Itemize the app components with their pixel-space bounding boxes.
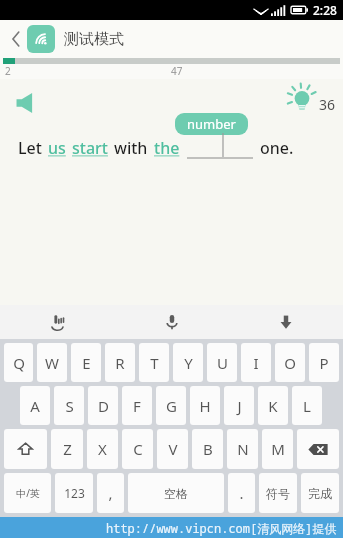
button[interactable]: G <box>156 386 186 425</box>
button[interactable]: B <box>192 429 223 469</box>
button[interactable]: 空格 <box>128 473 224 513</box>
staticText: X <box>98 439 107 459</box>
staticText: 47 <box>171 64 183 78</box>
button[interactable]: Back <box>5 22 27 56</box>
staticText: 中/英 <box>16 486 40 500</box>
staticText: 完成 <box>308 486 332 501</box>
button[interactable]: with <box>114 137 148 159</box>
staticText: H <box>199 396 211 416</box>
button[interactable]: , <box>97 473 124 513</box>
button[interactable]: A <box>20 386 50 425</box>
staticText: V <box>168 439 178 459</box>
button[interactable]: R <box>105 343 135 382</box>
button[interactable]: Let <box>18 137 42 159</box>
button[interactable]: I <box>241 343 271 382</box>
staticText: T <box>150 353 159 373</box>
button[interactable]: Answer blank <box>187 139 253 159</box>
staticText: one. <box>260 137 294 159</box>
staticText: Let <box>18 137 42 159</box>
button[interactable]: 完成 <box>301 473 339 513</box>
staticText: C <box>133 439 143 459</box>
button[interactable]: Voice input <box>115 305 229 339</box>
staticText: D <box>98 396 109 416</box>
staticText: J <box>237 396 242 416</box>
button[interactable]: X <box>87 429 118 469</box>
button[interactable]: start <box>72 137 108 159</box>
staticText: . <box>239 483 244 503</box>
staticText: G <box>166 396 177 416</box>
button[interactable]: Play audio <box>16 89 50 117</box>
staticText: 空格 <box>164 486 188 501</box>
button[interactable]: P <box>309 343 339 382</box>
button[interactable]: D <box>88 386 118 425</box>
staticText: Z <box>63 439 72 459</box>
staticText: Y <box>184 353 193 373</box>
button[interactable]: H <box>190 386 220 425</box>
staticText: , <box>108 483 113 503</box>
staticText: U <box>217 353 228 373</box>
button[interactable]: T <box>139 343 169 382</box>
staticText: R <box>115 353 125 373</box>
button[interactable]: V <box>157 429 188 469</box>
button[interactable]: F <box>122 386 152 425</box>
staticText: F <box>133 396 141 416</box>
staticText: 123 <box>64 485 85 501</box>
staticText: start <box>72 137 108 159</box>
button[interactable]: App icon <box>27 25 55 53</box>
staticText: I <box>253 353 259 373</box>
staticText: W <box>45 353 59 373</box>
button[interactable]: . <box>228 473 255 513</box>
button[interactable]: 123 <box>55 473 93 513</box>
button[interactable]: us <box>48 137 66 159</box>
staticText: S <box>65 396 74 416</box>
button[interactable]: 符号 <box>259 473 297 513</box>
button[interactable]: number <box>175 113 248 135</box>
button[interactable]: the <box>154 137 180 159</box>
staticText: E <box>82 353 91 373</box>
button[interactable]: E <box>71 343 101 382</box>
button[interactable]: Hint <box>287 85 336 117</box>
staticText: N <box>237 439 249 459</box>
staticText: 2 <box>5 64 11 78</box>
staticText: the <box>154 137 180 159</box>
staticText: M <box>271 439 285 459</box>
button[interactable]: Y <box>173 343 203 382</box>
staticText: 测试模式 <box>64 30 124 49</box>
button[interactable]: K <box>258 386 288 425</box>
button[interactable]: O <box>275 343 305 382</box>
staticText: L <box>303 396 311 416</box>
staticText: 36 <box>319 95 336 114</box>
staticText: 2:28 <box>313 2 337 18</box>
button[interactable]: Shift <box>4 429 47 469</box>
staticText: B <box>203 439 213 459</box>
button[interactable]: Q <box>4 343 33 382</box>
staticText: K <box>268 396 278 416</box>
button[interactable]: Handwriting input <box>0 305 115 339</box>
staticText: http://www.vipcn.com[清风网络]提供 <box>106 520 337 536</box>
button[interactable]: Hide keyboard <box>229 305 343 339</box>
button[interactable]: Z <box>51 429 83 469</box>
staticText: O <box>284 353 296 373</box>
button[interactable]: M <box>262 429 293 469</box>
button[interactable]: U <box>207 343 237 382</box>
button[interactable]: L <box>292 386 322 425</box>
staticText: A <box>30 396 40 416</box>
staticText: 符号 <box>266 486 290 501</box>
button[interactable]: one. <box>260 137 294 159</box>
button[interactable]: N <box>227 429 258 469</box>
staticText: Q <box>13 353 25 373</box>
button[interactable]: J <box>224 386 254 425</box>
button[interactable]: 中/英 <box>4 473 51 513</box>
staticText: with <box>114 137 148 159</box>
button[interactable]: W <box>37 343 67 382</box>
button[interactable]: C <box>122 429 153 469</box>
staticText: P <box>319 353 329 373</box>
button[interactable]: Backspace <box>297 429 339 469</box>
button[interactable]: S <box>54 386 84 425</box>
staticText: number <box>187 115 236 133</box>
staticText: us <box>48 137 66 159</box>
